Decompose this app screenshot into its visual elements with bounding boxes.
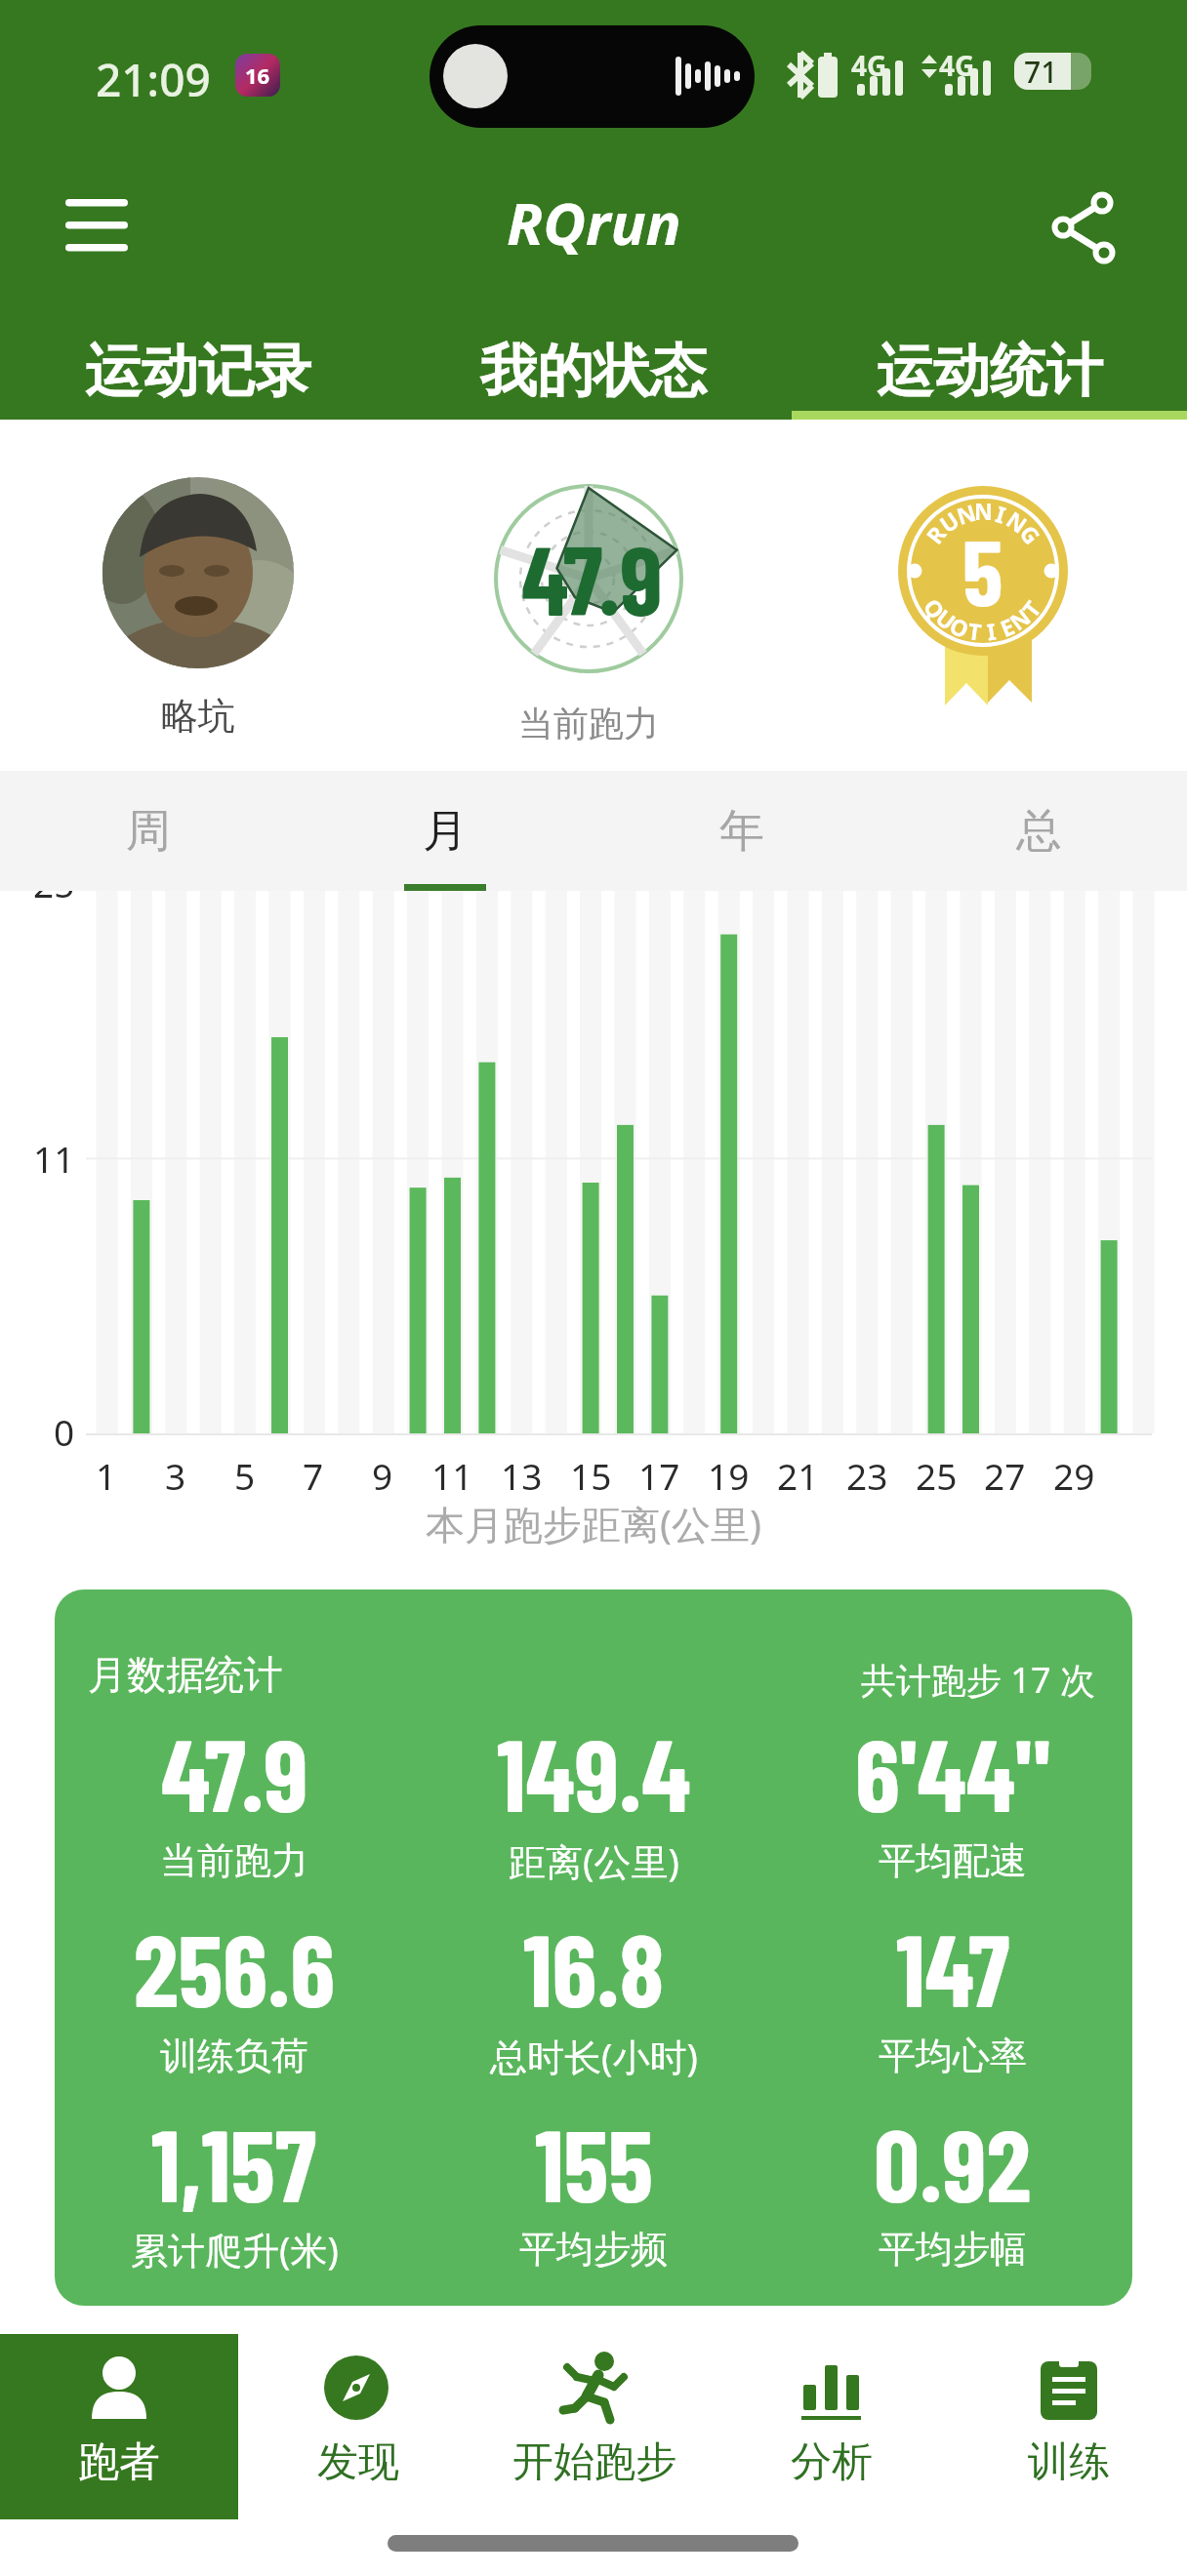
button[interactable] [1050,190,1117,257]
staticText: 6'44" [855,1711,1051,1832]
staticText: 25 [916,1451,958,1500]
button[interactable]: 开始跑步 [475,2334,713,2519]
staticText: 71 [1024,52,1058,92]
staticText: T [966,615,984,647]
staticText: I [992,498,1010,530]
staticText: 当前跑力 [160,1837,308,1884]
staticText: 5 [962,514,1003,624]
staticText: 11 [33,1134,75,1183]
button[interactable]: 运动统计 [792,322,1187,420]
button[interactable] [898,486,1068,656]
button[interactable]: 我的状态 [395,322,792,420]
staticText: N [1003,601,1036,636]
staticText: 月 [423,803,468,860]
staticText: Q [917,592,953,625]
staticText: 我的状态 [480,336,707,407]
staticText: 发现 [317,2436,399,2488]
button[interactable]: 训练 [950,2334,1187,2519]
staticText: 27 [984,1451,1026,1500]
button[interactable]: 分析 [713,2334,950,2519]
staticText: N [974,496,993,526]
staticText: 16 [245,60,270,90]
staticText: 256.6 [134,1906,335,2028]
staticText: 23 [846,1451,888,1500]
staticText: 总时长(小时) [490,2031,698,2081]
staticText: RQrun [507,182,681,262]
staticText: 开始跑步 [512,2436,676,2488]
staticText: 19 [708,1451,750,1500]
staticText: 月数据统计 [88,1650,283,1699]
staticText: 总 [1016,803,1061,860]
staticText: 当前跑力 [518,702,659,745]
staticText: 本月跑步距离(公里) [426,1497,761,1550]
staticText: 平均步幅 [879,2226,1027,2273]
staticText: 平均步频 [519,2226,668,2273]
staticText: 21:09 [96,49,211,110]
staticText: I [985,615,998,646]
staticText: 25 [33,891,75,907]
staticText: 训练负荷 [160,2033,308,2079]
button[interactable]: 年 [593,771,890,891]
staticText: 11 [431,1451,473,1500]
button[interactable]: 月数据统计 [55,1590,1132,2306]
staticText: 13 [501,1451,543,1500]
button[interactable] [102,477,294,668]
staticText: 47.9 [521,518,663,635]
staticText: 运动统计 [877,336,1103,407]
staticText: 训练 [1028,2436,1110,2488]
button[interactable]: 发现 [238,2334,475,2519]
staticText: N [1001,504,1034,539]
staticText: 4G [939,47,975,84]
staticText: 4G [851,47,887,84]
staticText: 7 [303,1451,324,1500]
staticText: 0 [54,1407,75,1456]
button[interactable]: 周 [0,771,297,891]
staticText: 3 [165,1451,186,1500]
staticText: G [1014,519,1048,550]
staticText: 年 [719,803,764,860]
staticText: 平均心率 [879,2033,1027,2079]
staticText: N [953,496,979,531]
staticText: U [930,602,963,636]
button[interactable]: 运动记录 [0,322,395,420]
staticText: 147 [896,1906,1010,2028]
button[interactable] [65,195,128,256]
staticText: 0.92 [874,2101,1032,2223]
staticText: 分析 [791,2436,873,2488]
staticText: 155 [535,2101,653,2223]
staticText: E [995,610,1019,643]
staticText: O [946,610,974,645]
staticText: 累计爬升(米) [131,2224,339,2274]
staticText: 29 [1053,1451,1095,1500]
staticText: 21 [777,1451,819,1500]
staticText: 149.4 [497,1711,691,1832]
staticText: R [919,519,952,550]
staticText: 平均配速 [879,1837,1027,1884]
staticText: 运动记录 [85,336,311,407]
staticText: 1,157 [151,2101,317,2223]
button[interactable]: 总 [890,771,1187,891]
staticText: 5 [234,1451,256,1500]
staticText: U [933,504,965,539]
staticText: 1 [96,1451,117,1500]
button[interactable]: 月 [297,771,593,891]
staticText: 17 [638,1451,680,1500]
staticText: 16.8 [523,1906,665,2028]
staticText: 9 [372,1451,393,1500]
staticText: 15 [570,1451,612,1500]
button[interactable]: 跑者 [0,2334,238,2519]
staticText: 47.9 [161,1711,308,1832]
staticText: T [1015,593,1047,623]
staticText: 跑者 [78,2436,160,2488]
staticText: 距离(公里) [509,1835,679,1886]
staticText: 周 [126,803,171,860]
staticText: 共计跑步 17 次 [861,1656,1095,1704]
staticText: 略坑 [161,693,235,740]
